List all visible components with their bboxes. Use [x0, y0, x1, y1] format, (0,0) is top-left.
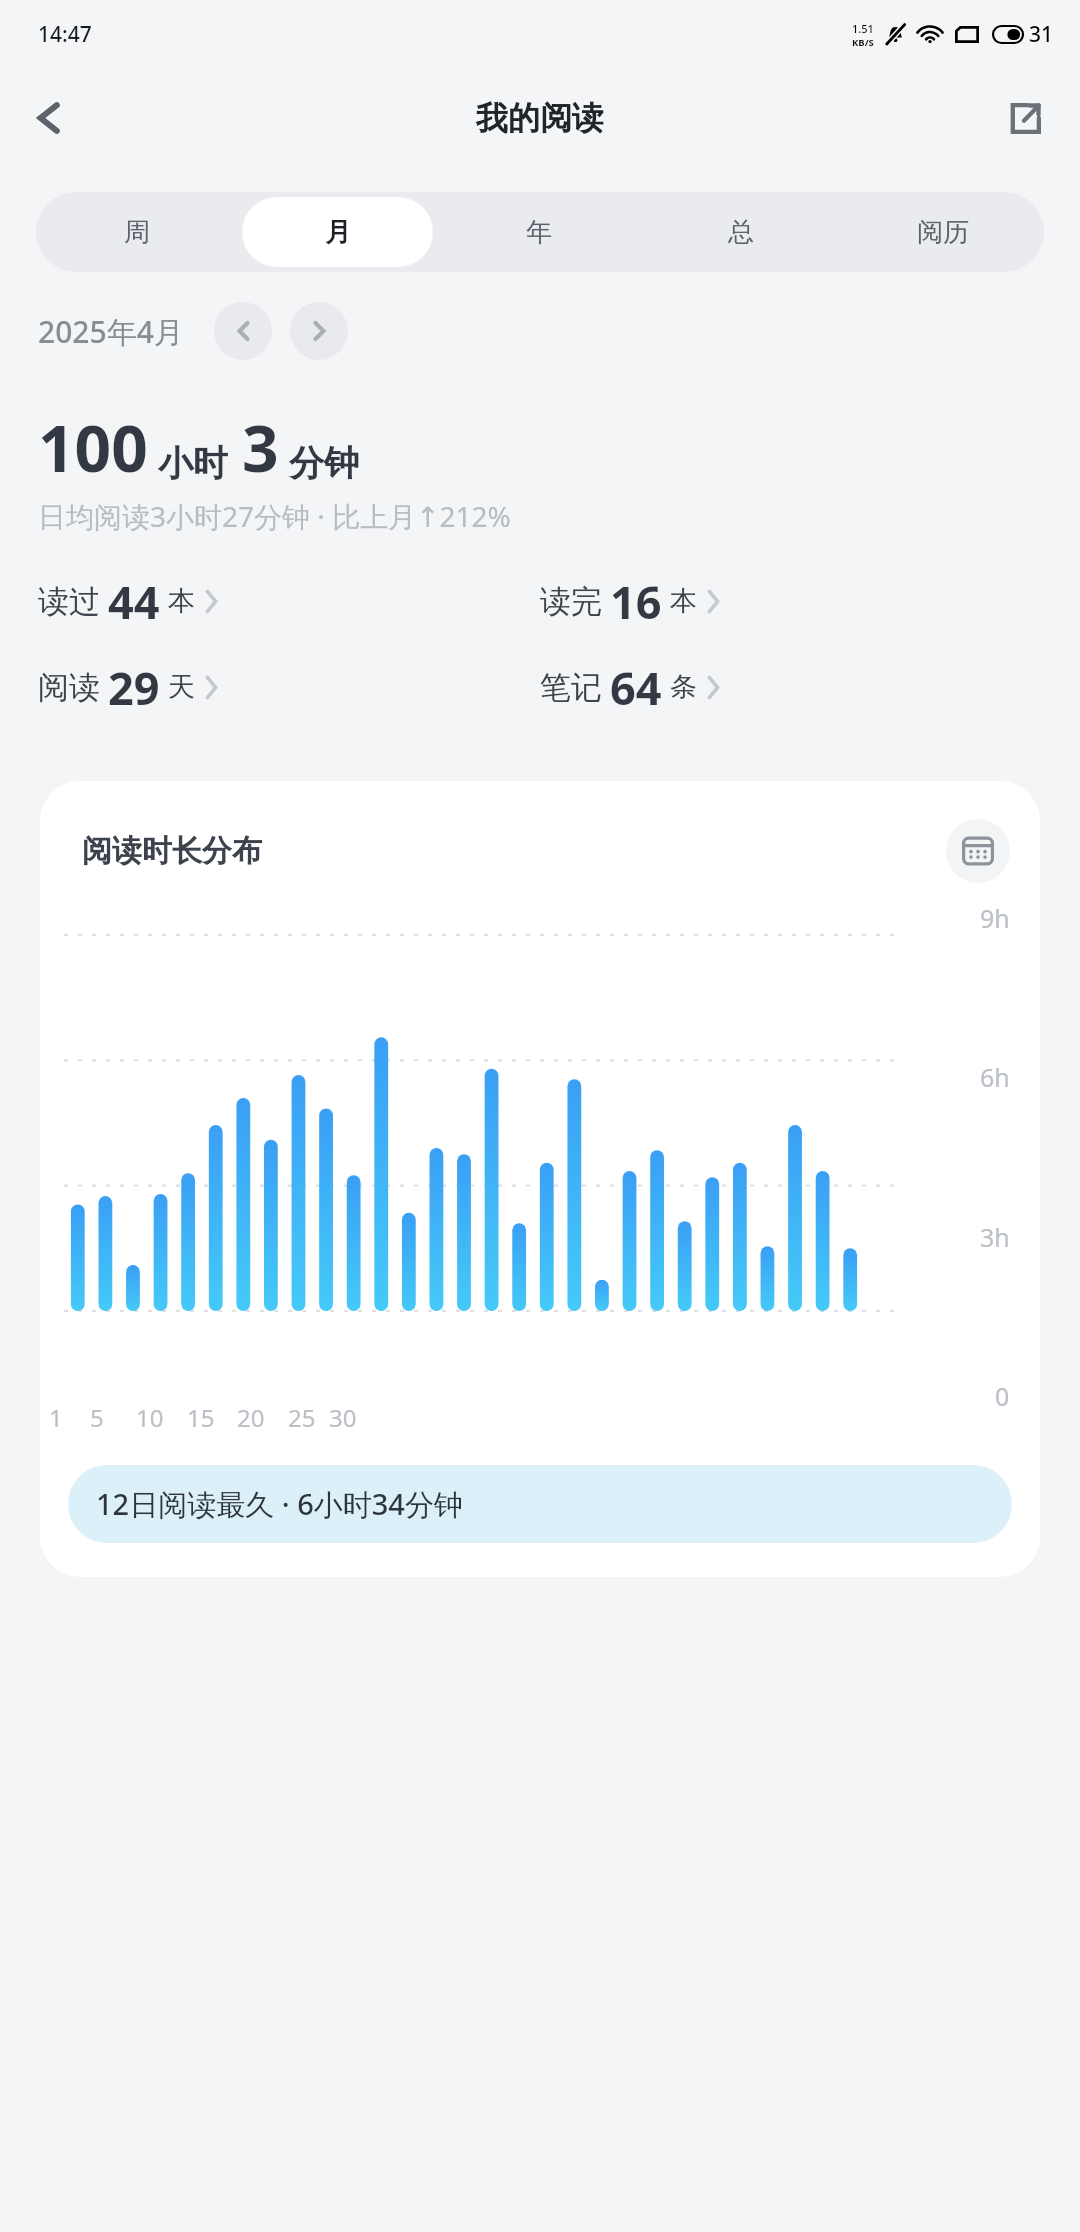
staticText: 0 [995, 1379, 1010, 1413]
staticText: 天 [168, 670, 195, 704]
staticText: 月 [325, 216, 351, 249]
staticText: 25 [288, 1401, 316, 1434]
button[interactable]: 笔记 [540, 655, 1042, 719]
staticText: 3 [242, 404, 279, 491]
button[interactable]: 阅历 [847, 197, 1039, 267]
button[interactable]: 12日阅读最久 · 6小时34分钟 [68, 1465, 1012, 1543]
staticText: 14:47 [38, 20, 92, 49]
staticText: 12日阅读最久 · 6小时34分钟 [96, 1484, 463, 1524]
staticText: 笔记 [540, 668, 602, 707]
staticText: 29 [108, 657, 160, 718]
staticText: 条 [670, 670, 697, 704]
button[interactable]: 读过 [38, 569, 540, 633]
staticText: 阅历 [917, 216, 969, 249]
staticText: 3h [980, 1220, 1010, 1254]
staticText: 读完 [540, 582, 602, 621]
button[interactable]: 阅读 [38, 655, 540, 719]
button[interactable]: Back [16, 85, 82, 151]
staticText: 2025年4月 [38, 311, 184, 352]
staticText: 30 [329, 1401, 357, 1434]
staticText: 分钟 [289, 441, 359, 485]
button[interactable]: 年 [443, 197, 635, 267]
staticText: 44 [108, 571, 160, 632]
staticText: 读过 [38, 582, 100, 621]
staticText: 9h [980, 901, 1010, 935]
staticText: 64 [610, 657, 662, 718]
staticText: 16 [610, 571, 662, 632]
staticText: 本 [670, 584, 697, 618]
button[interactable]: 读完 [540, 569, 1042, 633]
staticText: 1 [49, 1401, 63, 1434]
staticText: 阅读 [38, 668, 100, 707]
staticText: 100 [38, 404, 148, 491]
staticText: 1.51 [852, 21, 874, 36]
button[interactable]: Share [992, 85, 1058, 151]
staticText: 阅读时长分布 [82, 832, 262, 870]
staticText: 年 [526, 216, 552, 249]
staticText: 我的阅读 [476, 98, 604, 138]
staticText: 6h [980, 1060, 1010, 1094]
staticText: 总 [728, 216, 754, 249]
button[interactable]: Next month [290, 302, 348, 360]
button[interactable]: 总 [645, 197, 837, 267]
staticText: 31 [1029, 20, 1054, 49]
staticText: 10 [136, 1401, 164, 1434]
button[interactable]: Previous month [214, 302, 272, 360]
staticText: 日均阅读3小时27分钟 · 比上月↑212% [38, 497, 511, 535]
staticText: 周 [124, 216, 150, 249]
staticText: 5 [90, 1401, 104, 1434]
button[interactable]: 周 [41, 197, 232, 267]
button[interactable]: Calendar [946, 819, 1010, 883]
staticText: 小时 [158, 441, 228, 485]
staticText: 15 [187, 1401, 215, 1434]
button[interactable]: 月 [242, 197, 433, 267]
staticText: 20 [237, 1401, 265, 1434]
staticText: KB/S [852, 36, 874, 49]
staticText: 本 [168, 584, 195, 618]
